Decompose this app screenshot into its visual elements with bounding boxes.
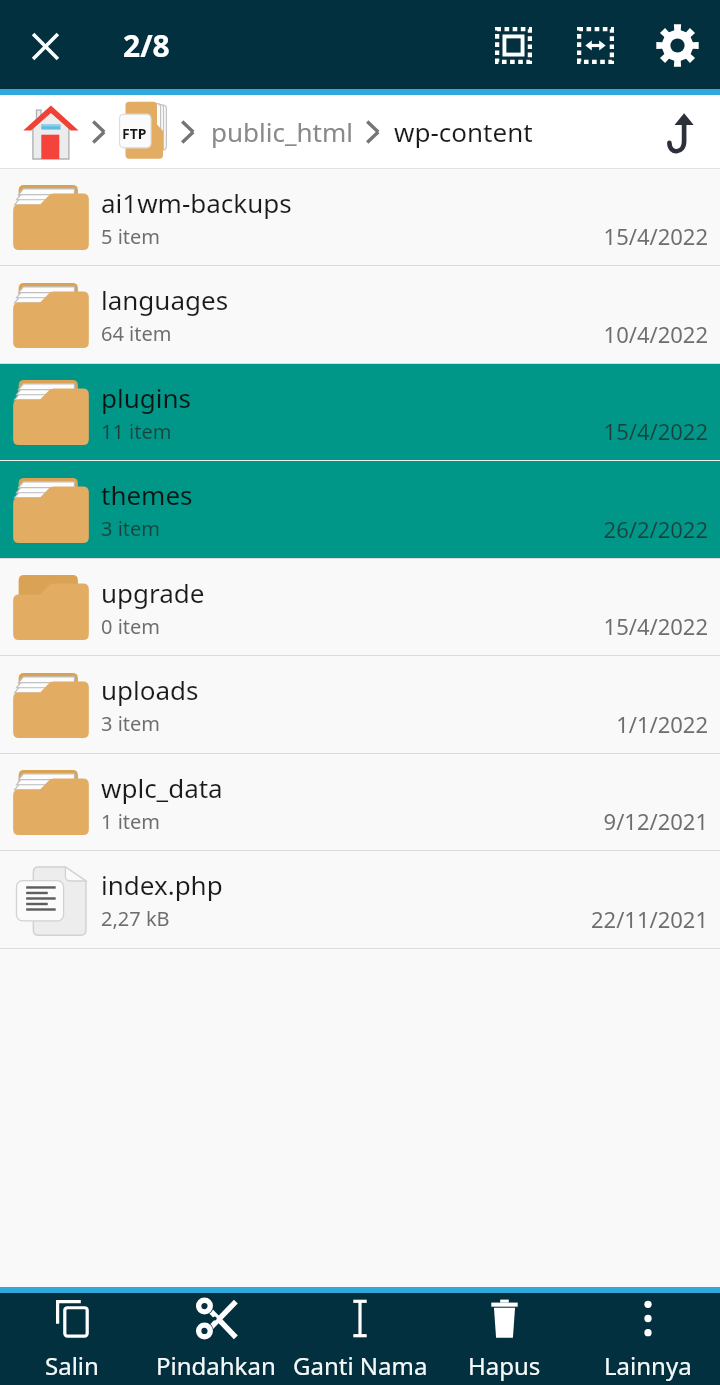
staticText: ai1wm-backups [101,185,292,220]
button[interactable]: Lainnya [576,1293,720,1385]
button[interactable]: Hapus [432,1293,576,1385]
staticText: wplc_data [101,770,223,805]
button[interactable]: ai1wm-backups [0,169,720,265]
staticText: Pindahkan [156,1349,276,1382]
staticText: 0 item [101,613,160,640]
button[interactable]: Select range [554,4,636,86]
staticText: FTP [122,124,147,143]
button[interactable]: wplc_data [0,754,720,850]
button[interactable]: Close selection [0,0,89,89]
staticText: 1/1/2022 [616,709,708,739]
button[interactable]: Pindahkan [144,1293,288,1385]
button[interactable]: Select all [472,4,554,86]
button[interactable]: Salin [0,1293,144,1385]
staticText: 2,27 kB [101,905,170,932]
staticText: 10/4/2022 [603,319,708,349]
button[interactable]: upgrade [0,559,720,655]
staticText: 3 item [101,515,160,542]
button[interactable]: plugins [0,364,720,460]
staticText: Salin [45,1349,99,1382]
staticText: 3 item [101,710,160,737]
staticText: plugins [101,380,191,415]
staticText: 26/2/2022 [603,514,708,544]
staticText: Ganti Nama [293,1349,428,1382]
staticText: 9/12/2021 [603,806,708,836]
button[interactable]: FTP root [115,98,175,166]
staticText: uploads [101,672,199,707]
staticText: 1 item [101,808,160,835]
button[interactable]: index.php [0,851,720,948]
staticText: 64 item [101,320,172,347]
button[interactable]: Up one level [640,96,712,168]
staticText: themes [101,477,193,512]
button[interactable]: Settings [636,4,718,86]
button[interactable]: Home [14,96,86,168]
staticText: 15/4/2022 [603,611,708,641]
staticText: Hapus [468,1349,541,1382]
button[interactable]: themes [0,461,720,558]
staticText: upgrade [101,575,205,610]
button[interactable]: languages [0,266,720,363]
staticText: 15/4/2022 [603,221,708,251]
button[interactable]: public_html [199,114,360,149]
staticText: 5 item [101,223,160,250]
button[interactable]: wp-content [384,114,541,149]
staticText: 15/4/2022 [603,416,708,446]
staticText: 11 item [101,418,172,445]
staticText: languages [101,282,229,317]
staticText: index.php [101,867,223,902]
button[interactable]: Ganti Nama [288,1293,432,1385]
staticText: Lainnya [604,1349,692,1382]
staticText: 2/8 [123,25,170,66]
staticText: 22/11/2021 [590,904,708,934]
button[interactable]: uploads [0,656,720,753]
